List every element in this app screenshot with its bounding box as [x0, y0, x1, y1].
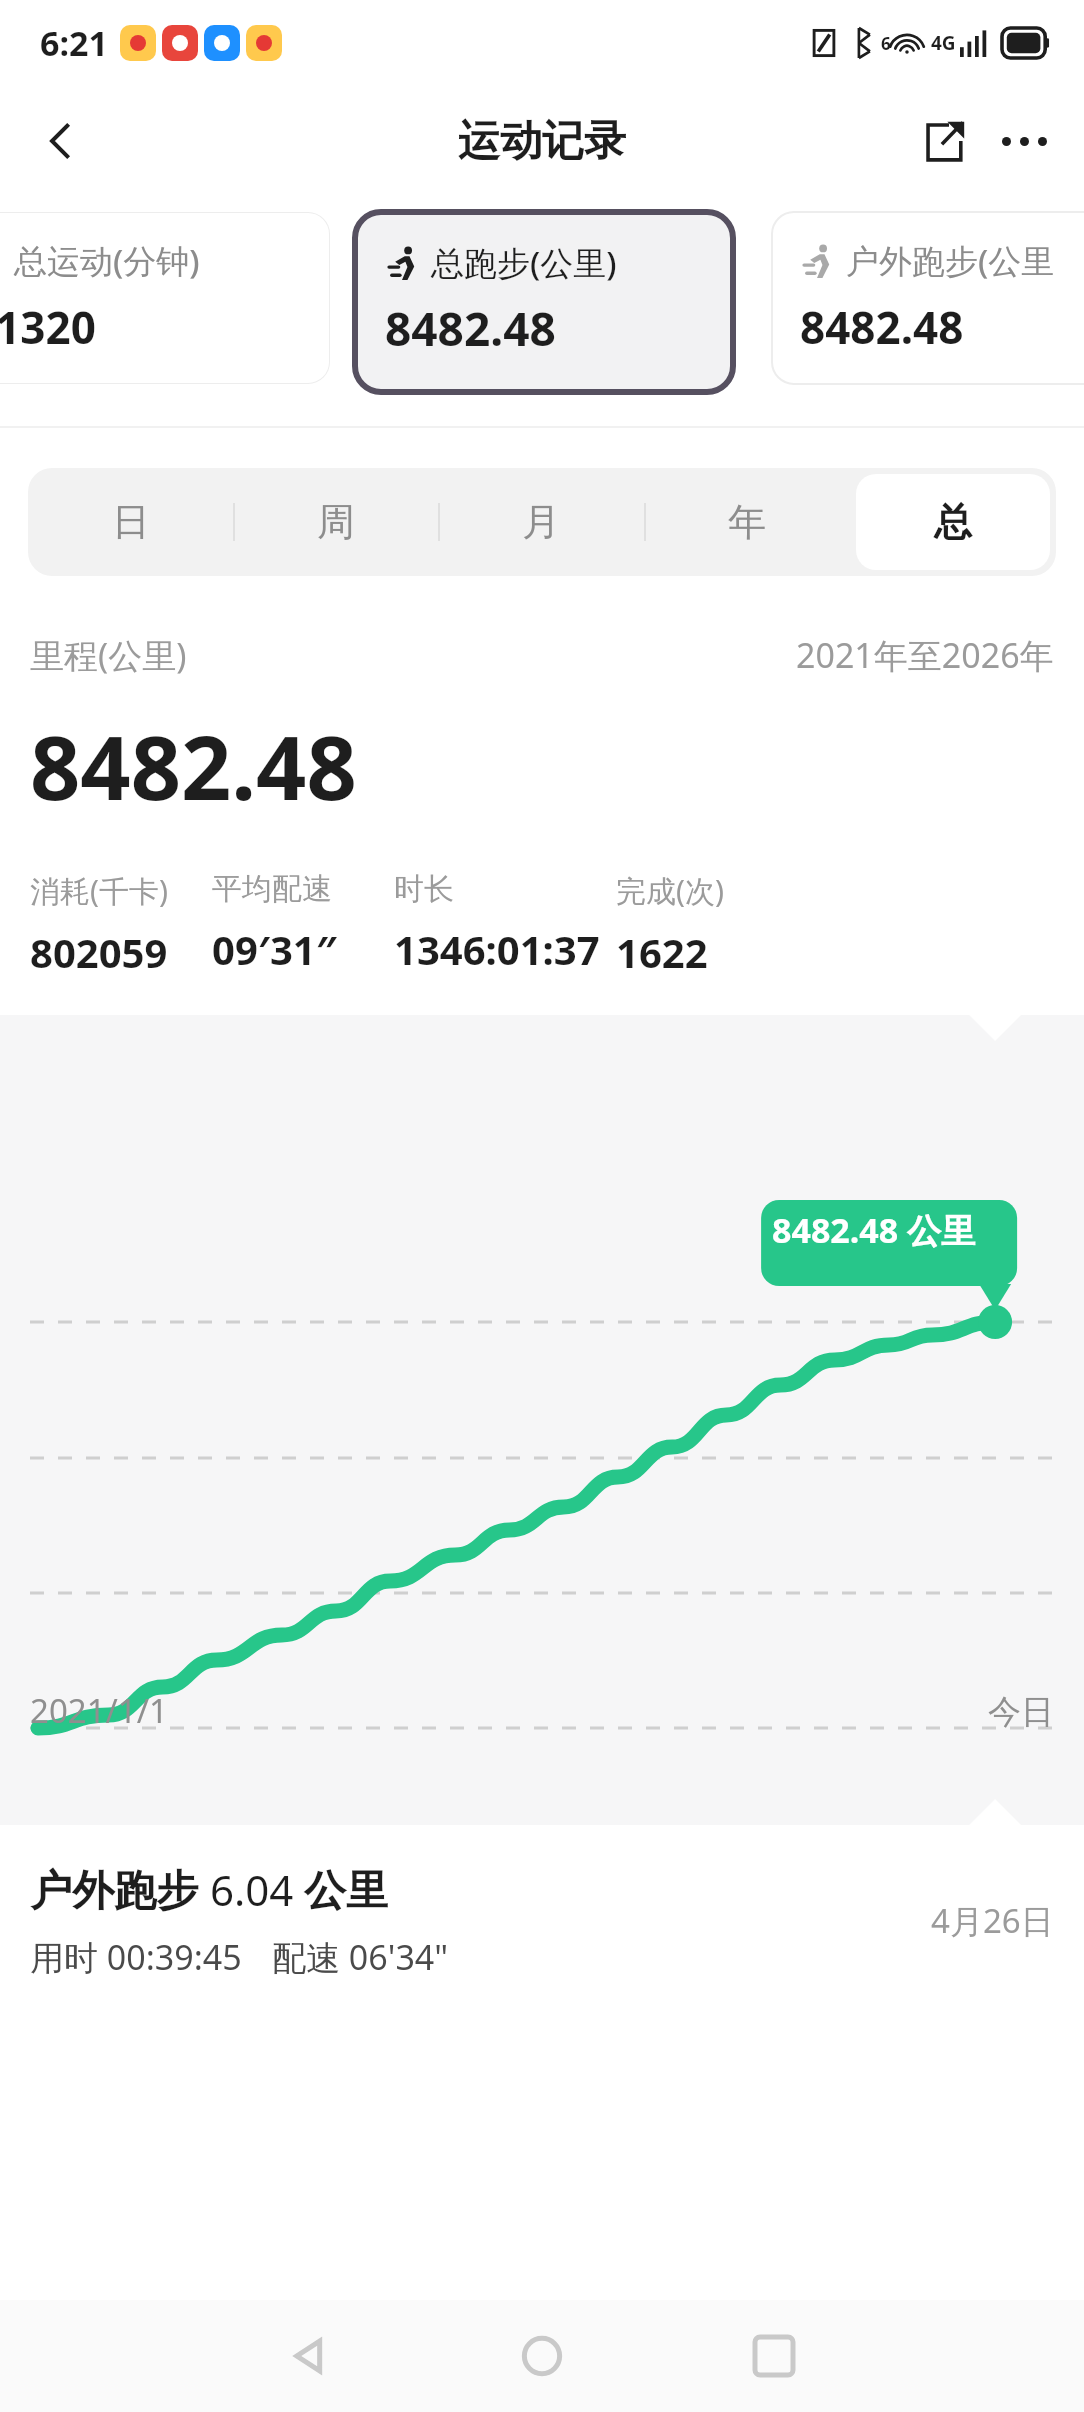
staticText: 1346:01:37: [394, 922, 600, 976]
button[interactable]: Back: [18, 99, 102, 183]
button[interactable]: 日: [34, 474, 227, 570]
button[interactable]: 总跑步(公里): [355, 212, 733, 392]
button[interactable]: Home: [504, 2300, 580, 2412]
staticText: 日: [112, 498, 150, 546]
button[interactable]: Back: [272, 2300, 348, 2412]
button[interactable]: Share: [904, 101, 984, 181]
staticText: 户外跑步(公里: [846, 238, 1055, 283]
staticText: 6.04: [210, 1861, 294, 1918]
staticText: 总跑步(公里): [431, 240, 617, 285]
staticText: 里程(公里): [30, 632, 187, 678]
button[interactable]: More options: [984, 101, 1064, 181]
staticText: 年: [728, 498, 766, 546]
button[interactable]: 周: [239, 474, 432, 570]
button[interactable]: 户外跑步(公里: [772, 212, 1084, 384]
staticText: 81320: [0, 297, 96, 357]
staticText: 1622: [616, 925, 708, 979]
button[interactable]: 总运动(分钟): [0, 212, 330, 384]
button[interactable]: 年: [650, 474, 844, 570]
button[interactable]: 月: [444, 474, 638, 570]
button[interactable]: 总: [856, 474, 1050, 570]
staticText: 总运动(分钟): [14, 238, 200, 283]
staticText: 运动记录: [458, 115, 626, 168]
staticText: 09′31″: [212, 922, 337, 976]
staticText: 2021年至2026年: [796, 632, 1054, 678]
staticText: 时长: [394, 870, 454, 908]
staticText: 消耗(千卡): [30, 870, 168, 911]
staticText: 户外跑步: [30, 1865, 198, 1918]
staticText: 公里: [304, 1865, 388, 1918]
staticText: 平均配速: [212, 870, 332, 908]
staticText: 完成(次): [616, 870, 724, 911]
staticText: 4G: [931, 30, 956, 56]
staticText: 4月26日: [931, 1898, 1054, 1943]
staticText: 6: [881, 32, 891, 55]
staticText: 配速 06'34": [272, 1934, 449, 1980]
button[interactable]: 户外跑步: [0, 1825, 1084, 2015]
button[interactable]: Recents: [736, 2300, 812, 2412]
staticText: 月: [522, 498, 560, 546]
staticText: 用时 00:39:45: [30, 1934, 242, 1980]
staticText: 802059: [30, 925, 168, 979]
staticText: 6:21: [40, 20, 108, 66]
staticText: 8482.48: [30, 706, 357, 826]
staticText: 今日: [988, 1691, 1054, 1733]
staticText: 2021/1/1: [30, 1688, 168, 1733]
staticText: 8482.48: [385, 297, 556, 360]
staticText: 8482.48: [800, 297, 964, 357]
staticText: 8482.48 公里: [772, 1207, 976, 1253]
staticText: 总: [934, 498, 972, 546]
staticText: 周: [317, 498, 355, 546]
